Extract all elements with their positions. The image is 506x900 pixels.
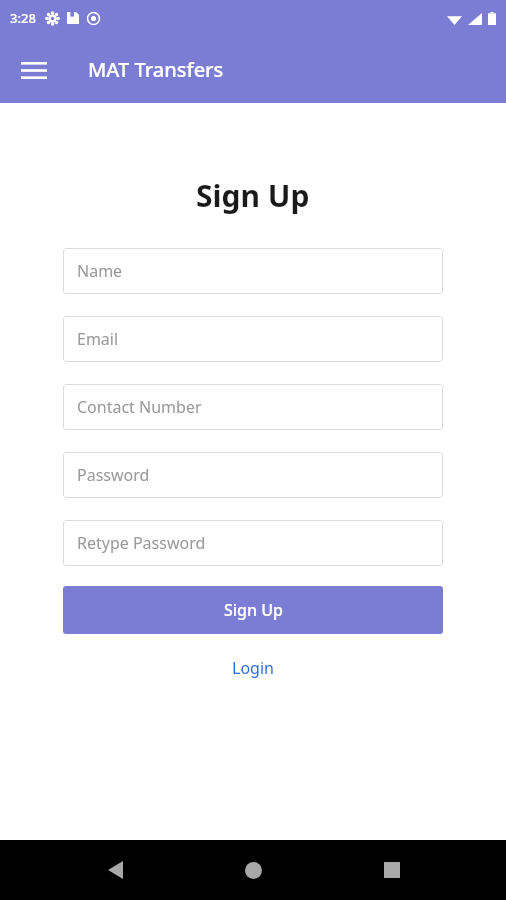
button[interactable]: Login (218, 652, 288, 684)
staticText: Contact Number (77, 396, 202, 418)
staticText: Sign Up (224, 599, 283, 621)
staticText: Sign Up (196, 175, 310, 216)
button[interactable]: Home (229, 846, 277, 894)
staticText: Name (77, 260, 123, 282)
button[interactable]: Email (63, 316, 443, 362)
staticText: Login (232, 657, 274, 679)
button[interactable]: Contact Number (63, 384, 443, 430)
button[interactable]: Recent apps (368, 846, 416, 894)
button[interactable]: Sign Up (63, 586, 443, 634)
staticText: Email (77, 328, 119, 350)
staticText: MAT Transfers (88, 56, 224, 83)
button[interactable]: Retype Password (63, 520, 443, 566)
button[interactable]: Open navigation menu (10, 46, 58, 94)
staticText: Password (77, 464, 150, 486)
staticText: Retype Password (77, 532, 206, 554)
staticText: 3:28 (10, 9, 36, 27)
button[interactable]: Back (91, 846, 139, 894)
button[interactable]: Password (63, 452, 443, 498)
button[interactable]: Name (63, 248, 443, 294)
